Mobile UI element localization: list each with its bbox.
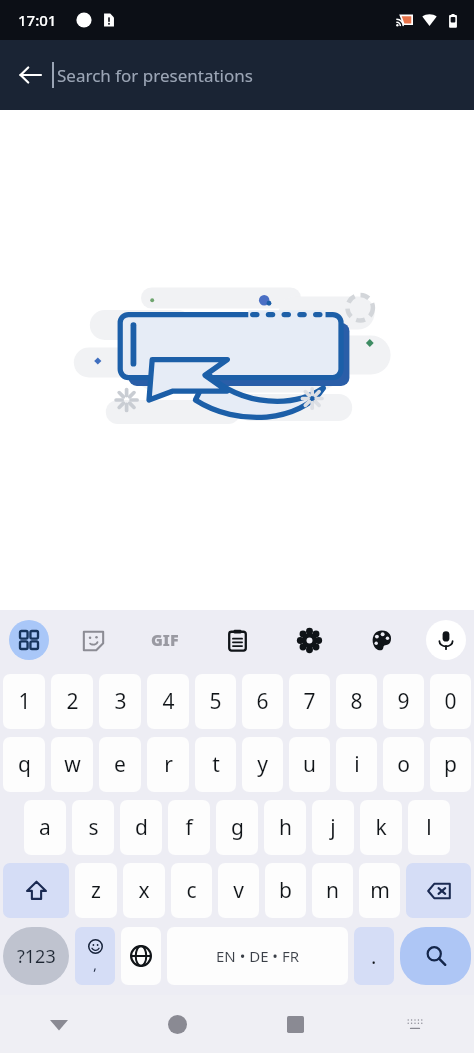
button[interactable]: s: [72, 800, 114, 855]
button[interactable]: EN • DE • FR: [167, 927, 348, 985]
staticText: 2: [66, 687, 79, 716]
button[interactable]: Settings: [273, 610, 345, 670]
button[interactable]: p: [430, 737, 471, 792]
staticText: q: [18, 750, 31, 779]
button[interactable]: Shift: [3, 863, 69, 918]
staticText: t: [212, 750, 220, 779]
button[interactable]: Themes: [345, 610, 417, 670]
staticText: b: [279, 876, 292, 905]
staticText: j: [330, 813, 336, 842]
staticText: 3: [114, 687, 127, 716]
staticText: d: [135, 813, 148, 842]
button[interactable]: Emoji and comma: [75, 927, 115, 985]
button[interactable]: 8: [336, 674, 377, 729]
staticText: w: [64, 750, 81, 779]
button[interactable]: n: [312, 863, 353, 918]
button[interactable]: 9: [383, 674, 424, 729]
staticText: 4: [162, 687, 175, 716]
staticText: 6: [256, 687, 269, 716]
button[interactable]: v: [218, 863, 259, 918]
button[interactable]: h: [264, 800, 306, 855]
staticText: .: [371, 943, 377, 970]
staticText: Search for presentations: [57, 64, 253, 87]
button[interactable]: w: [51, 737, 93, 792]
button[interactable]: 0: [430, 674, 471, 729]
button[interactable]: k: [360, 800, 402, 855]
button[interactable]: Stickers: [57, 610, 129, 670]
button[interactable]: Search: [400, 927, 471, 985]
button[interactable]: x: [123, 863, 165, 918]
button[interactable]: 2: [51, 674, 93, 729]
button[interactable]: 5: [195, 674, 236, 729]
staticText: p: [444, 750, 457, 779]
staticText: x: [138, 876, 150, 905]
staticText: f: [185, 813, 193, 842]
button[interactable]: 6: [242, 674, 283, 729]
button[interactable]: e: [99, 737, 141, 792]
button[interactable]: Clipboard: [201, 610, 273, 670]
button[interactable]: b: [265, 863, 306, 918]
button[interactable]: 4: [147, 674, 189, 729]
staticText: ,: [93, 954, 98, 974]
staticText: GIF: [151, 629, 179, 651]
staticText: z: [91, 876, 101, 905]
button[interactable]: y: [242, 737, 283, 792]
button[interactable]: u: [289, 737, 330, 792]
button[interactable]: ?123: [3, 927, 69, 985]
staticText: y: [257, 750, 268, 779]
button[interactable]: Back: [8, 53, 52, 97]
staticText: m: [370, 876, 390, 905]
button[interactable]: q: [3, 737, 45, 792]
button[interactable]: z: [75, 863, 117, 918]
button[interactable]: Voice input: [426, 620, 466, 660]
staticText: ?123: [17, 944, 56, 969]
button[interactable]: .: [354, 927, 394, 985]
staticText: 9: [397, 687, 410, 716]
staticText: 1: [18, 687, 31, 716]
button[interactable]: m: [359, 863, 400, 918]
button[interactable]: c: [171, 863, 212, 918]
button[interactable]: 3: [99, 674, 141, 729]
button[interactable]: i: [336, 737, 377, 792]
button[interactable]: d: [120, 800, 162, 855]
button[interactable]: Backspace: [406, 863, 471, 918]
button[interactable]: a: [24, 800, 66, 855]
button[interactable]: j: [312, 800, 354, 855]
staticText: 8: [350, 687, 363, 716]
staticText: e: [114, 750, 126, 779]
staticText: r: [164, 750, 173, 779]
staticText: a: [39, 813, 51, 842]
button[interactable]: o: [383, 737, 424, 792]
staticText: v: [233, 876, 244, 905]
button[interactable]: Home: [118, 995, 236, 1053]
button[interactable]: Apps: [9, 620, 49, 660]
button[interactable]: r: [147, 737, 189, 792]
button[interactable]: g: [216, 800, 258, 855]
button[interactable]: GIF: [129, 610, 201, 670]
button[interactable]: 7: [289, 674, 330, 729]
staticText: EN • DE • FR: [216, 946, 300, 966]
staticText: n: [326, 876, 339, 905]
staticText: s: [88, 813, 99, 842]
button[interactable]: l: [408, 800, 450, 855]
button[interactable]: t: [195, 737, 236, 792]
button[interactable]: Switch keyboard: [355, 995, 474, 1053]
staticText: o: [397, 750, 410, 779]
staticText: i: [354, 750, 360, 779]
staticText: 17:01: [18, 10, 57, 30]
button[interactable]: Hide keyboard: [0, 995, 118, 1053]
staticText: 5: [209, 687, 222, 716]
button[interactable]: Recent apps: [236, 995, 355, 1053]
staticText: 0: [444, 687, 457, 716]
staticText: u: [303, 750, 316, 779]
staticText: c: [186, 876, 197, 905]
staticText: 7: [303, 687, 316, 716]
button[interactable]: f: [168, 800, 210, 855]
button[interactable]: Change language: [121, 927, 161, 985]
staticText: l: [426, 813, 432, 842]
staticText: h: [279, 813, 292, 842]
staticText: g: [231, 813, 244, 842]
staticText: k: [375, 813, 387, 842]
button[interactable]: 1: [3, 674, 45, 729]
